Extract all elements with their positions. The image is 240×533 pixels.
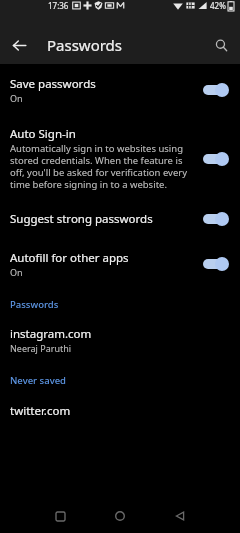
staticText: 17:36	[48, 0, 69, 11]
button[interactable]: Toggle	[198, 79, 232, 101]
staticText: Passwords	[10, 298, 59, 311]
staticText: Passwords	[47, 35, 123, 55]
button[interactable]: Save passwords	[0, 72, 240, 108]
staticText: instagram.com	[10, 326, 92, 342]
button[interactable]: Navigate up	[0, 26, 38, 64]
button[interactable]: Toggle	[198, 253, 232, 275]
button[interactable]: Recent apps	[38, 499, 82, 533]
button[interactable]: Autofill for other apps	[0, 246, 240, 282]
staticText: Neeraj Paruthi	[10, 342, 72, 354]
button[interactable]: instagram.com	[0, 324, 240, 356]
staticText: Suggest strong passwords	[10, 211, 153, 227]
staticText: twitter.com	[10, 403, 71, 419]
staticText: Autofill for other apps	[10, 250, 129, 266]
staticText: Never saved	[10, 374, 66, 387]
button[interactable]: Suggest strong passwords	[0, 204, 240, 234]
button[interactable]: Search	[202, 26, 240, 64]
staticText: Save passwords	[10, 76, 96, 92]
staticText: On	[10, 266, 23, 278]
button[interactable]: Toggle	[198, 148, 232, 170]
button[interactable]: Auto Sign-in	[0, 122, 240, 195]
button[interactable]: Back	[158, 499, 202, 533]
staticText: 42%	[210, 0, 226, 11]
staticText: Automatically sign in to websites using …	[10, 142, 192, 191]
button[interactable]: twitter.com	[0, 401, 240, 421]
button[interactable]: Home	[98, 499, 142, 533]
staticText: On	[10, 92, 23, 104]
staticText: Auto Sign-in	[10, 126, 76, 142]
button[interactable]: Toggle	[198, 208, 232, 230]
